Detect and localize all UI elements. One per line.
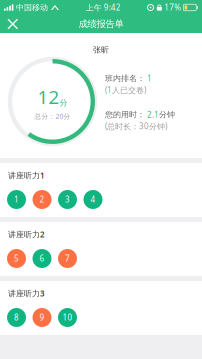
staticText: 讲座听力1 — [8, 170, 45, 181]
button[interactable]: 6 — [32, 249, 51, 268]
staticText: 10 — [62, 312, 72, 323]
staticText: 7 — [65, 253, 70, 264]
staticText: (总时长：30分钟) — [105, 121, 167, 131]
button[interactable]: 4 — [83, 190, 102, 209]
staticText: 8 — [14, 312, 19, 323]
staticText: 2 — [39, 194, 44, 205]
staticText: 1 — [147, 73, 152, 84]
staticText: 17% — [164, 2, 181, 13]
staticText: 4 — [90, 194, 95, 205]
staticText: 您的用时： — [105, 110, 147, 119]
staticText: 分钟 — [159, 110, 175, 119]
staticText: 1 — [14, 194, 19, 205]
button[interactable]: 7 — [58, 249, 77, 268]
button[interactable]: 10 — [58, 308, 77, 327]
staticText: 5 — [14, 253, 19, 264]
button[interactable]: 2 — [32, 190, 51, 209]
staticText: 上午 9:42 — [86, 2, 121, 13]
button[interactable]: 1 — [7, 190, 26, 209]
staticText: 9 — [39, 312, 44, 323]
staticText: 6 — [39, 253, 44, 264]
button[interactable]: 3 — [58, 190, 77, 209]
staticText: 3 — [65, 194, 70, 205]
button[interactable]: 8 — [7, 308, 26, 327]
staticText: 总分：20分 — [34, 112, 70, 121]
staticText: 12 — [37, 84, 59, 109]
staticText: 讲座听力3 — [8, 288, 45, 299]
staticText: 张昕 — [93, 45, 109, 55]
button[interactable]: 关闭 — [0, 15, 25, 33]
staticText: 讲座听力2 — [8, 229, 45, 240]
staticText: 成绩报告单 — [78, 18, 123, 30]
staticText: (1人已交卷) — [105, 85, 146, 95]
staticText: 2.1 — [147, 109, 159, 120]
staticText: 中国移动 — [16, 3, 48, 12]
staticText: 分 — [59, 98, 67, 108]
button[interactable]: 9 — [32, 308, 51, 327]
staticText: 班内排名： — [105, 73, 147, 83]
button[interactable]: 5 — [7, 249, 26, 268]
